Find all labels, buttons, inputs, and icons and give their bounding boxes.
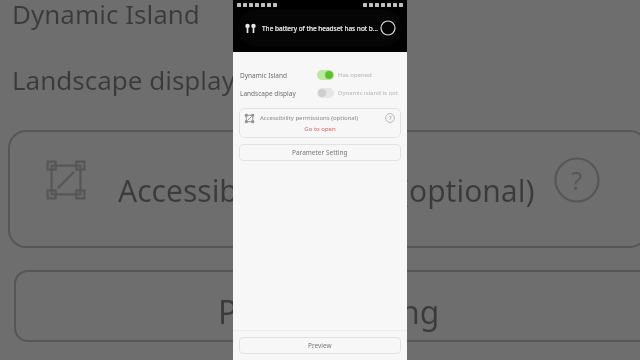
staticText: Dynamic Island [240, 71, 287, 80]
staticText: Landscape display [240, 89, 296, 98]
staticText: Pa [218, 290, 256, 334]
staticText: The battery of the headset has not b… [262, 24, 378, 33]
staticText: Landscape display [12, 62, 235, 97]
staticText: Go to open [239, 125, 401, 133]
staticText: Preview [308, 341, 332, 350]
staticText: Has opened [338, 71, 372, 79]
staticText: ? [389, 114, 392, 122]
staticText: Dynamic island is not displa [338, 89, 400, 97]
staticText: Accessibili [118, 170, 262, 211]
button[interactable]: Help [385, 113, 395, 123]
button[interactable]: Toggle off [317, 88, 334, 98]
staticText: Accessibility permissions (optional) [260, 114, 359, 122]
button[interactable]: Landscape display [233, 84, 407, 102]
staticText: Parameter Setting [292, 148, 348, 157]
staticText: ? [571, 162, 583, 197]
button[interactable]: Parameter Setting [239, 144, 401, 161]
staticText: (optional) [400, 170, 535, 211]
staticText: ng [400, 290, 440, 334]
button[interactable]: Toggle on [317, 70, 334, 80]
button[interactable]: Dynamic Island [233, 66, 407, 84]
button[interactable]: Preview [239, 337, 401, 354]
button[interactable]: Accessibility permissions (optional) [239, 108, 401, 138]
staticText: Dynamic Island [12, 0, 200, 31]
button[interactable]: The battery of the headset has not b… [238, 10, 402, 46]
